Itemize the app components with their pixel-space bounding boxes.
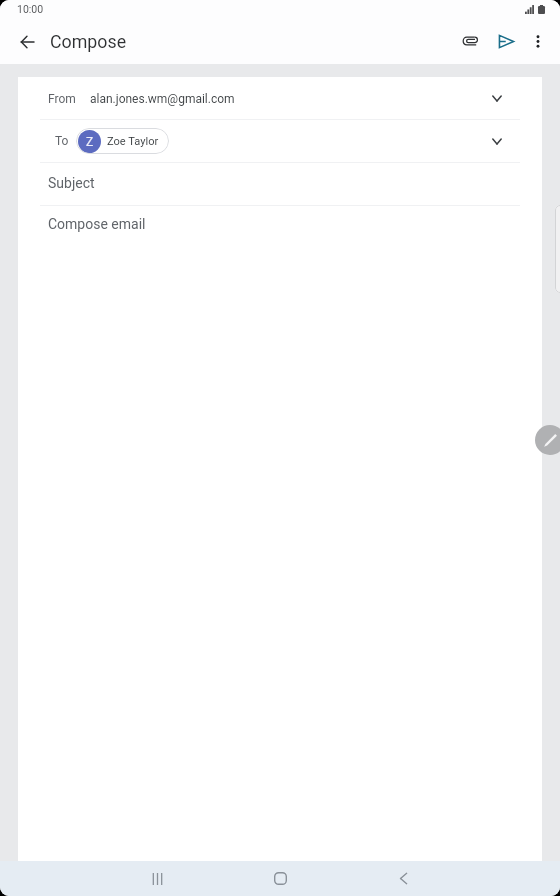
staticText: Subject	[48, 175, 95, 191]
button[interactable]: Send	[486, 18, 526, 64]
button[interactable]: Back	[380, 861, 426, 896]
button[interactable]: Attach file	[450, 18, 491, 64]
staticText: To	[55, 134, 69, 148]
button[interactable]: Back	[7, 22, 47, 62]
staticText: Zoe Taylor	[107, 135, 159, 148]
staticText: From	[48, 92, 76, 106]
button[interactable]: Compose email	[18, 206, 542, 861]
staticText: alan.jones.wm@gmail.com	[90, 92, 235, 106]
button[interactable]: More options	[518, 18, 558, 64]
button[interactable]: Recent apps	[134, 861, 180, 896]
button[interactable]: Home	[257, 861, 303, 896]
staticText: 10:00	[17, 3, 44, 15]
button[interactable]: Z	[76, 128, 169, 154]
button[interactable]: To	[18, 120, 542, 162]
staticText: Compose	[50, 31, 127, 52]
button[interactable]: Subject	[18, 163, 542, 205]
button[interactable]: From	[18, 77, 542, 119]
staticText: Compose email	[48, 216, 146, 232]
button[interactable]: Compose	[535, 425, 560, 455]
staticText: Z	[86, 135, 94, 149]
